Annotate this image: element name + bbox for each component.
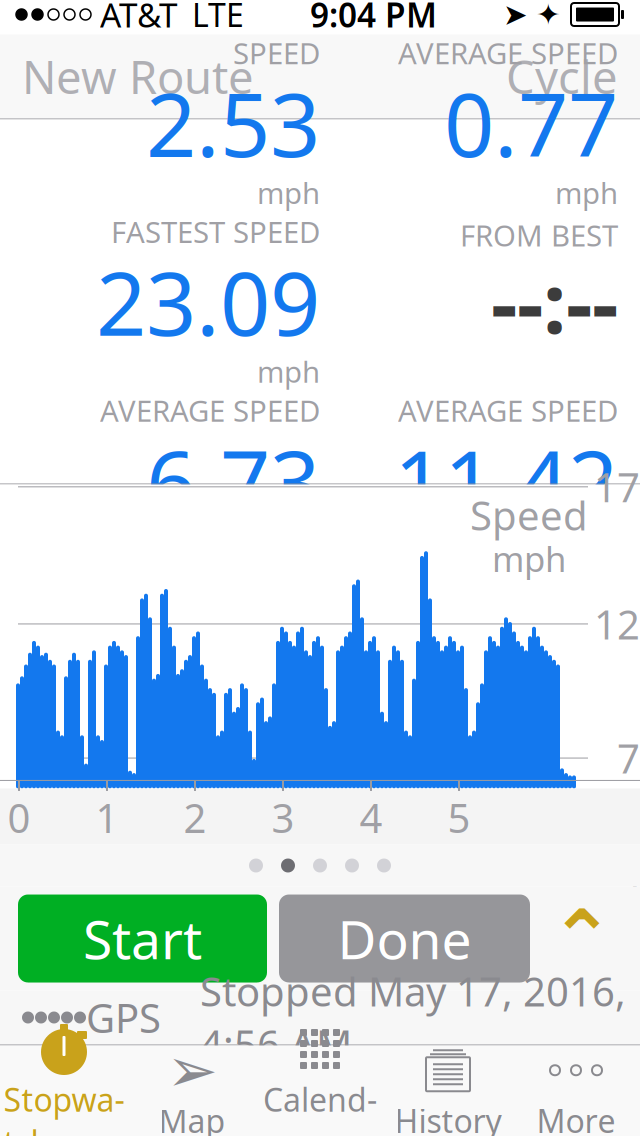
staticText: ✦ [536, 0, 561, 31]
staticText: FROM BEST [460, 216, 618, 255]
staticText: ➢ [166, 1035, 217, 1105]
staticText: SPEED [233, 33, 320, 72]
staticText: 17 [594, 460, 640, 513]
staticText: mph [555, 173, 618, 212]
staticText: AVERAGE SPEED [398, 33, 618, 72]
staticText: 6.73 [146, 422, 320, 539]
staticText: 7 [617, 731, 640, 785]
staticText: ➤ [503, 0, 528, 31]
staticText: 23.09 [96, 243, 320, 360]
staticText: 9:04 PM [310, 0, 437, 37]
button[interactable]: ➢ [128, 1045, 256, 1136]
staticText: 0 [7, 791, 30, 844]
staticText: Done [337, 903, 471, 974]
staticText: New Route [22, 46, 254, 107]
staticText: 1 [95, 791, 118, 844]
staticText: GPS [86, 991, 161, 1044]
staticText: LTE [192, 0, 244, 36]
staticText: Start [83, 903, 202, 974]
staticText: 5 [447, 791, 470, 844]
staticText: More [536, 1099, 615, 1136]
staticText: History [394, 1099, 501, 1136]
button[interactable]: Stopwatch [0, 1045, 128, 1136]
staticText: Cycle [506, 46, 618, 107]
button[interactable]: New Route [22, 46, 254, 107]
staticText: 0.77 [444, 64, 618, 181]
staticText: Stopwatch [3, 1078, 124, 1136]
staticText: ⌃ [549, 895, 614, 982]
staticText: Stopped May 17, 2016, 4:56 AM [200, 964, 626, 1071]
staticText: mph [492, 536, 566, 582]
button[interactable]: More [512, 1045, 640, 1136]
staticText: mph [257, 352, 320, 391]
staticText: FASTEST SPEED [111, 212, 320, 251]
staticText: 2.53 [146, 64, 320, 181]
staticText: 2 [183, 791, 206, 844]
staticText: 3 [271, 791, 294, 844]
staticText: Speed [470, 488, 588, 542]
staticText: Calendar [263, 1078, 377, 1136]
button[interactable]: Expand [542, 894, 622, 982]
staticText: Map [158, 1099, 225, 1136]
button[interactable]: Cycle [506, 46, 618, 107]
staticText: AVERAGE SPEED [398, 391, 618, 430]
staticText: 11.42 [394, 422, 618, 539]
button[interactable]: History [384, 1045, 512, 1136]
staticText: Current Split [442, 531, 618, 570]
button[interactable]: Done [279, 894, 530, 982]
button[interactable]: Calendar [256, 1045, 384, 1136]
staticText: AT&T [100, 0, 178, 37]
staticText: --:-- [491, 247, 618, 356]
staticText: 4 [359, 791, 382, 844]
button[interactable]: Start [18, 894, 267, 982]
staticText: AVERAGE SPEED [100, 391, 320, 430]
staticText: mph [257, 173, 320, 212]
staticText: 12 [594, 597, 640, 650]
